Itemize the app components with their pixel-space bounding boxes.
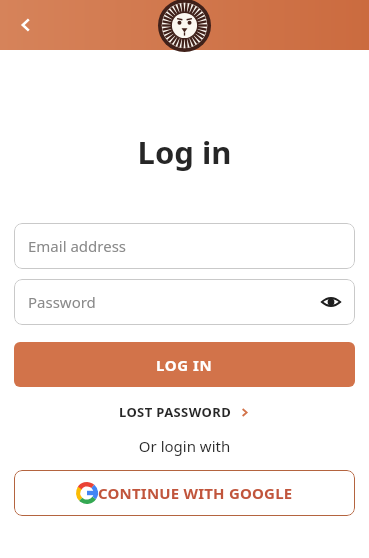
staticText: Password bbox=[28, 292, 96, 312]
button[interactable]: Show password bbox=[315, 286, 347, 318]
staticText: CONTINUE WITH GOOGLE bbox=[98, 483, 293, 503]
button[interactable]: CONTINUE WITH GOOGLE bbox=[14, 470, 355, 516]
button[interactable]: Email address bbox=[14, 223, 355, 269]
staticText: Or login with bbox=[0, 436, 369, 456]
staticText: Email address bbox=[28, 236, 127, 256]
other: Logo bbox=[158, 0, 211, 52]
staticText: LOST PASSWORD bbox=[119, 403, 232, 421]
button[interactable]: LOST PASSWORD bbox=[109, 399, 260, 425]
button[interactable]: LOG IN bbox=[14, 342, 355, 387]
staticText: LOG IN bbox=[156, 355, 213, 375]
staticText: Log in bbox=[0, 131, 369, 173]
button[interactable]: Back bbox=[2, 1, 50, 49]
button[interactable]: Password bbox=[14, 279, 355, 325]
